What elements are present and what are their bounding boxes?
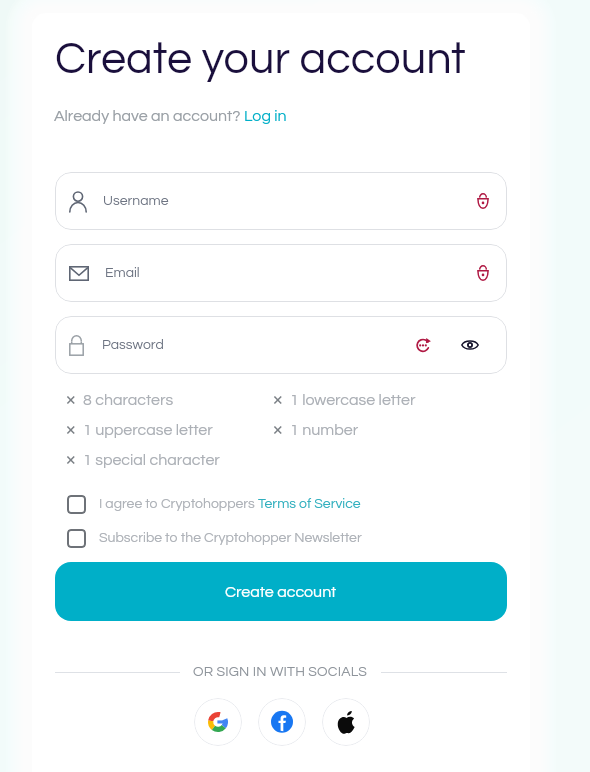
button[interactable]: Terms of Service [258,497,361,511]
staticText: Email [105,266,140,280]
button[interactable]: I agree to Cryptohoppers [67,490,361,518]
staticText: Already have an account? [54,108,244,124]
button[interactable]: Log in [244,108,287,124]
button[interactable]: Subscribe to the Cryptohopper Newsletter [67,524,362,552]
staticText: Username [103,194,169,208]
button[interactable]: Username [55,172,507,230]
staticText: 8 characters [83,392,174,408]
staticText: Subscribe to the Cryptohopper Newsletter [99,531,362,545]
button[interactable]: Email [55,244,507,302]
button[interactable]: Generate password [409,331,437,359]
staticText: Password [102,338,164,352]
staticText: 1 special character [83,452,220,468]
staticText: Create your account [55,36,466,82]
button[interactable]: Create account [55,562,507,621]
button[interactable]: Sign in with Apple [322,698,370,746]
staticText: 1 lowercase letter [290,392,416,408]
button[interactable]: Show password [456,331,484,359]
staticText: 1 uppercase letter [83,422,213,438]
staticText: I agree to Cryptohoppers [99,497,258,511]
staticText: OR SIGN IN WITH SOCIALS [193,665,368,679]
button[interactable]: Sign in with Google [194,698,242,746]
staticText: 1 number [290,422,359,438]
staticText: Create account [225,584,337,600]
button[interactable]: Sign in with Facebook [258,698,306,746]
button[interactable]: Password [55,316,507,374]
